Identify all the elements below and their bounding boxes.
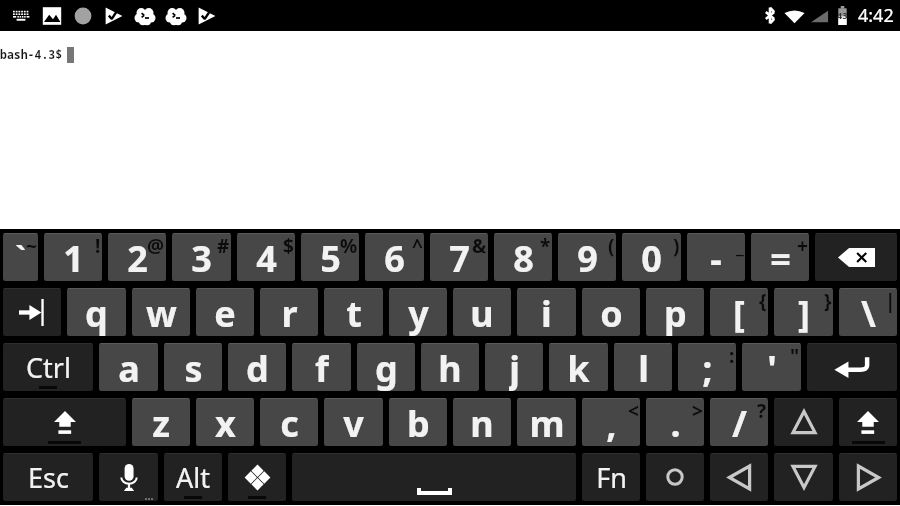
button[interactable]: Screenshot	[36, 0, 67, 31]
other: Right	[857, 465, 880, 490]
other: Voice input	[121, 464, 137, 491]
button[interactable]: m	[517, 398, 576, 446]
button[interactable]: Terminal	[129, 0, 160, 31]
staticText: 4	[256, 234, 277, 281]
staticText: t	[346, 289, 362, 336]
button[interactable]: Fn	[582, 453, 640, 501]
button[interactable]: 8	[494, 233, 552, 281]
button[interactable]: j	[485, 343, 543, 391]
button[interactable]: Left	[710, 453, 768, 501]
button[interactable]: n	[453, 398, 511, 446]
button[interactable]: \	[839, 288, 897, 336]
button[interactable]: u	[453, 288, 511, 336]
button[interactable]: Voice input	[99, 453, 158, 501]
button[interactable]: v	[324, 398, 383, 446]
button[interactable]: [	[710, 288, 768, 336]
button[interactable]: App	[98, 0, 129, 31]
staticText: |	[885, 288, 896, 314]
staticText: `	[15, 237, 26, 278]
button[interactable]: Down	[774, 453, 833, 501]
button[interactable]: x	[196, 398, 254, 446]
button[interactable]: Right	[839, 453, 897, 501]
staticText: +	[797, 233, 808, 259]
button[interactable]: l	[614, 343, 672, 391]
button[interactable]: w	[132, 288, 190, 336]
staticText: d	[246, 344, 269, 391]
staticText: x	[215, 399, 236, 446]
staticText: p	[664, 289, 687, 336]
button[interactable]: 7	[430, 233, 488, 281]
button[interactable]: Keyboard	[5, 0, 36, 31]
button[interactable]: q	[67, 288, 126, 336]
staticText: @	[147, 233, 165, 259]
button[interactable]: Terminal	[160, 0, 191, 31]
staticText: (	[608, 233, 615, 259]
button[interactable]: Symbols	[228, 453, 286, 501]
staticText: i	[541, 289, 552, 336]
button[interactable]: r	[260, 288, 318, 336]
button[interactable]: d	[228, 343, 286, 391]
button[interactable]: '	[742, 343, 801, 391]
staticText: k	[567, 344, 590, 391]
button[interactable]: e	[196, 288, 254, 336]
other: Shift	[857, 411, 879, 434]
button[interactable]: Home	[646, 453, 704, 501]
button[interactable]: Ctrl	[3, 343, 93, 391]
button[interactable]: 6	[365, 233, 424, 281]
button[interactable]: Esc	[3, 453, 93, 501]
button[interactable]: Shift	[3, 398, 126, 446]
button[interactable]: h	[421, 343, 479, 391]
button[interactable]: 3	[172, 233, 231, 281]
staticText: -	[710, 234, 722, 281]
button[interactable]: Backspace	[815, 233, 897, 281]
button[interactable]: ,	[582, 398, 640, 446]
button[interactable]: 2	[108, 233, 166, 281]
button[interactable]: z	[132, 398, 190, 446]
button[interactable]: o	[582, 288, 640, 336]
other: Space	[417, 488, 452, 495]
button[interactable]: Enter	[807, 343, 897, 391]
button[interactable]: 5	[301, 233, 359, 281]
button[interactable]: ]	[774, 288, 833, 336]
button[interactable]: k	[549, 343, 608, 391]
button[interactable]: 9	[558, 233, 616, 281]
button[interactable]: Space	[292, 453, 576, 501]
staticText: ;	[702, 344, 713, 391]
button[interactable]: i	[517, 288, 576, 336]
button[interactable]: g	[357, 343, 415, 391]
staticText: 8	[513, 234, 534, 281]
button[interactable]: `	[3, 233, 38, 281]
button[interactable]: 1	[44, 233, 102, 281]
other: Left	[728, 465, 751, 490]
button[interactable]: Up	[774, 398, 833, 446]
button[interactable]: c	[260, 398, 318, 446]
button[interactable]: Download	[67, 0, 98, 31]
staticText: [	[733, 289, 745, 336]
staticText: &	[472, 233, 487, 259]
button[interactable]: Shift	[839, 398, 897, 446]
button[interactable]: .	[646, 398, 704, 446]
staticText: 1	[63, 234, 84, 281]
button[interactable]: b	[389, 398, 447, 446]
button[interactable]: ;	[678, 343, 736, 391]
button[interactable]: a	[99, 343, 158, 391]
staticText: 9	[577, 234, 598, 281]
button[interactable]: 0	[622, 233, 681, 281]
staticText: }	[824, 288, 832, 314]
button[interactable]: =	[751, 233, 809, 281]
button[interactable]: f	[292, 343, 351, 391]
button[interactable]: Alt	[164, 453, 222, 501]
button[interactable]: t	[324, 288, 383, 336]
button[interactable]: Tab	[3, 288, 61, 336]
staticText: 7	[449, 234, 470, 281]
staticText: ]	[798, 289, 810, 336]
button[interactable]: -	[687, 233, 745, 281]
button[interactable]: /	[710, 398, 768, 446]
button[interactable]: p	[646, 288, 704, 336]
button[interactable]: App	[191, 0, 222, 31]
button[interactable]: y	[389, 288, 447, 336]
staticText: ?	[757, 398, 767, 424]
button[interactable]: s	[164, 343, 222, 391]
staticText: Ctrl	[26, 349, 71, 386]
button[interactable]: 4	[237, 233, 295, 281]
